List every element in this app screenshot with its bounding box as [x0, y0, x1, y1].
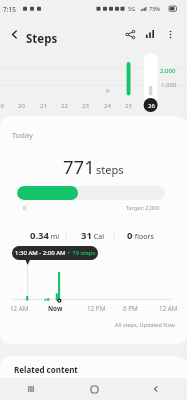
- staticText: 26: [148, 102, 155, 110]
- staticText: Steps: [26, 31, 58, 47]
- staticText: Today: [12, 130, 33, 140]
- staticText: 1,000: [161, 81, 177, 89]
- button[interactable]: Back: [125, 378, 187, 400]
- button[interactable]: Navigate up: [4, 24, 24, 44]
- staticText: 12 AM: [10, 304, 29, 313]
- staticText: 19: [0, 102, 4, 110]
- button[interactable]: 2,000: [0, 44, 187, 116]
- staticText: All steps, Updated Now: [115, 321, 175, 328]
- staticText: 25: [125, 102, 132, 110]
- staticText: 31: [81, 229, 92, 242]
- staticText: steps: [96, 162, 124, 177]
- button[interactable]: [0, 356, 187, 400]
- staticText: 22: [61, 102, 68, 110]
- staticText: 24: [104, 102, 111, 110]
- staticText: 0: [127, 229, 133, 242]
- staticText: 79 steps: [72, 249, 96, 257]
- button[interactable]: [17, 186, 165, 200]
- staticText: 75%: [149, 5, 160, 12]
- staticText: 0.34: [30, 229, 49, 242]
- staticText: •: [66, 249, 72, 257]
- staticText: 5G: [128, 5, 136, 12]
- staticText: 12 PM: [87, 304, 106, 313]
- staticText: 6 PM: [123, 304, 138, 313]
- staticText: Now: [48, 304, 63, 313]
- staticText: Related content: [14, 364, 78, 375]
- staticText: 1:30 AM - 2:00 AM: [15, 249, 66, 257]
- button[interactable]: Trends chart: [140, 24, 160, 44]
- button[interactable]: Share: [120, 24, 140, 44]
- button[interactable]: Recent apps: [0, 378, 63, 400]
- staticText: 23: [82, 102, 89, 110]
- staticText: Target: 2,000: [126, 204, 160, 211]
- staticText: floors: [133, 232, 154, 242]
- staticText: 7:15: [3, 5, 16, 14]
- button[interactable]: More options: [160, 24, 180, 44]
- staticText: 21: [40, 102, 47, 110]
- staticText: 12 AM: [159, 304, 178, 313]
- button[interactable]: Home: [63, 378, 125, 400]
- staticText: Cal: [92, 232, 104, 242]
- button[interactable]: 1:30 AM - 2:00 AM: [12, 246, 98, 260]
- staticText: 771: [63, 154, 95, 179]
- staticText: 2,000: [160, 67, 176, 75]
- staticText: 0: [23, 204, 27, 211]
- staticText: mi: [49, 232, 60, 242]
- staticText: 20: [18, 102, 25, 110]
